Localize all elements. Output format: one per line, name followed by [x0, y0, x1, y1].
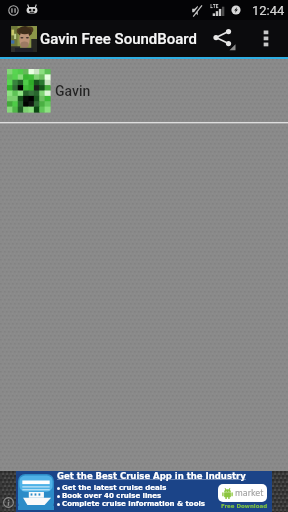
button[interactable]: More options [250, 20, 281, 57]
staticText: Get the Best Cruise App in the Industry [57, 471, 246, 481]
button[interactable]: Share [197, 20, 250, 57]
staticText: Complete cruise information & tools [62, 500, 206, 508]
staticText: Free Download [221, 503, 268, 509]
staticText: Book over 40 cruise lines [62, 492, 162, 500]
staticText: Gavin Free SoundBoard [40, 30, 197, 48]
button[interactable]: Ad info [0, 471, 288, 512]
other: Ad info [3, 497, 14, 508]
staticText: 12:44 [252, 3, 285, 18]
staticText: Gavin [55, 83, 91, 99]
button[interactable]: Android Market [218, 484, 267, 502]
staticText: market [235, 489, 264, 498]
staticText: Get the latest cruise deals [62, 484, 167, 492]
button[interactable]: Gavin [0, 59, 288, 122]
